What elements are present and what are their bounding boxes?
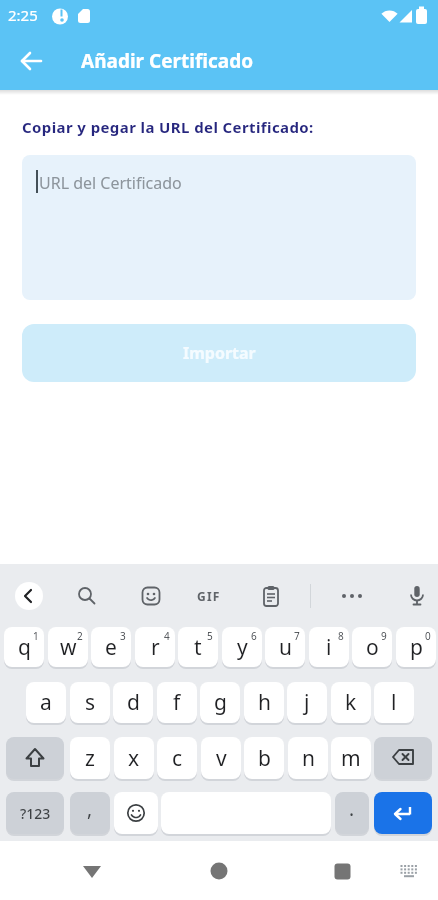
staticText: Copiar y pegar la URL del Certificado:: [22, 117, 314, 137]
staticText: k: [345, 688, 357, 717]
button[interactable]: URL del Certificado: [22, 155, 416, 300]
button[interactable]: h: [244, 682, 284, 723]
button[interactable]: ?123: [6, 792, 64, 834]
button[interactable]: [72, 581, 102, 611]
button[interactable]: x: [114, 737, 154, 779]
button[interactable]: a: [26, 682, 66, 723]
button[interactable]: u: [265, 627, 305, 667]
staticText: o: [366, 633, 379, 662]
button[interactable]: [136, 581, 166, 611]
button[interactable]: m: [331, 737, 371, 779]
staticText: b: [258, 744, 271, 773]
staticText: h: [258, 688, 271, 717]
staticText: .: [349, 796, 355, 822]
staticText: u: [279, 633, 292, 662]
staticText: j: [304, 688, 310, 717]
button[interactable]: y: [222, 627, 262, 667]
button[interactable]: p: [396, 627, 436, 667]
staticText: 6: [251, 629, 257, 643]
button[interactable]: v: [201, 737, 241, 779]
staticText: 4: [164, 629, 170, 643]
staticText: 5: [207, 629, 213, 643]
staticText: GIF: [197, 588, 221, 604]
button[interactable]: [374, 737, 432, 779]
staticText: 9: [381, 629, 387, 643]
staticText: v: [216, 744, 227, 773]
button[interactable]: w: [48, 627, 88, 667]
staticText: ?123: [20, 804, 51, 823]
staticText: 3: [120, 629, 126, 643]
button[interactable]: o: [352, 627, 392, 667]
button[interactable]: Importar: [22, 324, 416, 382]
button[interactable]: b: [244, 737, 284, 779]
button[interactable]: s: [70, 682, 110, 723]
staticText: 2:25: [8, 5, 38, 25]
staticText: e: [105, 633, 117, 662]
staticText: z: [85, 744, 95, 773]
button[interactable]: e: [91, 627, 131, 667]
button[interactable]: [114, 792, 158, 834]
button[interactable]: d: [113, 682, 153, 723]
button[interactable]: k: [331, 682, 371, 723]
staticText: 0: [425, 629, 431, 643]
staticText: n: [302, 744, 315, 773]
staticText: 7: [294, 629, 300, 643]
staticText: f: [173, 688, 181, 717]
button[interactable]: r: [135, 627, 175, 667]
staticText: i: [326, 633, 332, 662]
staticText: y: [237, 633, 248, 662]
staticText: g: [214, 688, 227, 717]
button[interactable]: g: [200, 682, 240, 723]
staticText: Importar: [183, 342, 256, 364]
staticText: x: [128, 744, 140, 773]
staticText: d: [127, 688, 140, 717]
button[interactable]: i: [309, 627, 349, 667]
button[interactable]: [326, 855, 358, 887]
button[interactable]: GIF: [190, 581, 228, 611]
staticText: 8: [338, 629, 344, 643]
staticText: 2: [77, 629, 83, 643]
button[interactable]: z: [70, 737, 110, 779]
staticText: URL del Certificado: [39, 172, 182, 194]
button[interactable]: [76, 855, 108, 887]
button[interactable]: [6, 737, 64, 779]
button[interactable]: f: [157, 682, 197, 723]
button[interactable]: [10, 39, 54, 83]
button[interactable]: [337, 581, 367, 611]
staticText: p: [410, 633, 423, 662]
button[interactable]: .: [335, 792, 369, 834]
button[interactable]: t: [178, 627, 218, 667]
staticText: m: [341, 744, 361, 773]
staticText: q: [18, 633, 31, 662]
button[interactable]: [256, 581, 286, 611]
button[interactable]: j: [287, 682, 327, 723]
button[interactable]: q: [4, 627, 44, 667]
button[interactable]: ,: [70, 792, 110, 834]
button[interactable]: l: [374, 682, 414, 723]
staticText: c: [172, 744, 183, 773]
staticText: l: [391, 688, 397, 717]
button[interactable]: [203, 855, 235, 887]
button[interactable]: c: [157, 737, 197, 779]
button[interactable]: n: [288, 737, 328, 779]
staticText: s: [85, 688, 96, 717]
staticText: 1: [33, 629, 39, 643]
button[interactable]: [374, 792, 432, 834]
button[interactable]: [402, 581, 432, 611]
button[interactable]: [15, 582, 43, 610]
staticText: Añadir Certificado: [81, 48, 254, 74]
staticText: a: [40, 688, 52, 717]
staticText: r: [151, 633, 160, 662]
staticText: ,: [87, 796, 93, 822]
staticText: t: [194, 633, 202, 662]
staticText: w: [60, 633, 77, 662]
button[interactable]: [396, 858, 422, 884]
